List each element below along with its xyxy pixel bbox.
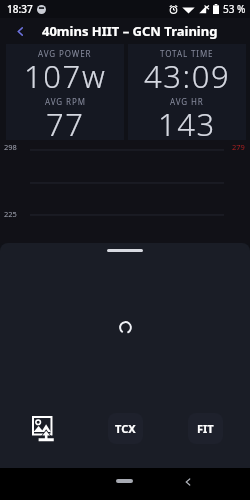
staticText: AVG RPM (45, 96, 86, 107)
staticText: 18:37 (7, 2, 33, 16)
staticText: AVG POWER (38, 48, 92, 59)
staticText: 225 (4, 209, 17, 219)
button[interactable]: Share image (30, 415, 56, 442)
staticText: 40mins HIIT – GCN Training (42, 22, 218, 40)
staticText: 53 % (223, 2, 246, 16)
button[interactable]: FIT (188, 413, 223, 444)
staticText: TCX (115, 421, 136, 436)
staticText: AVG HR (170, 96, 204, 107)
staticText: 279 (232, 142, 245, 152)
staticText: TOTAL TIME (160, 48, 214, 59)
staticText: 77 (46, 103, 85, 145)
staticText: FIT (197, 421, 214, 436)
button[interactable]: TCX (108, 413, 143, 444)
staticText: 107w (24, 55, 107, 97)
button[interactable]: Back (0, 18, 40, 44)
staticText: 43:09 (144, 55, 231, 97)
staticText: 298 (4, 142, 17, 152)
staticText: 143 (158, 103, 216, 145)
